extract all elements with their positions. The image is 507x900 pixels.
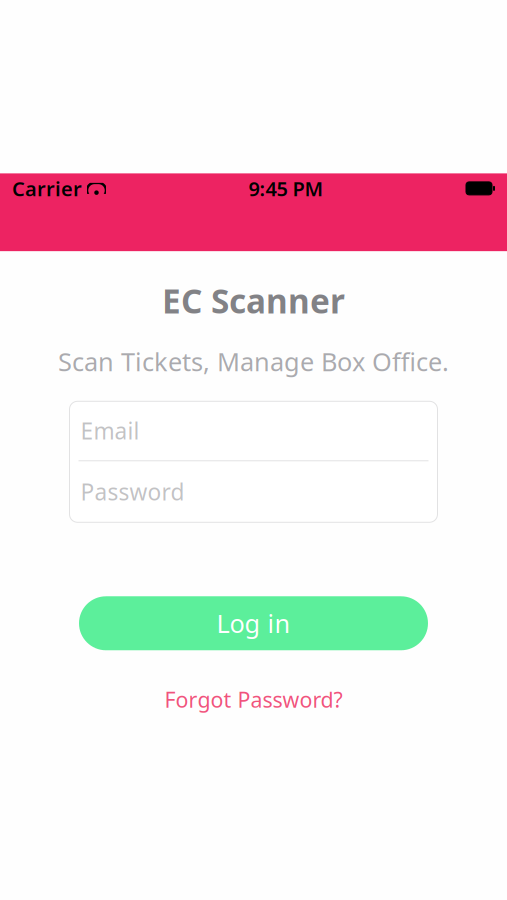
staticText: Email: [80, 416, 139, 446]
staticText: Forgot Password?: [164, 685, 342, 714]
button[interactable]: Log in: [79, 596, 428, 650]
staticText: 9:45 PM: [248, 175, 323, 202]
staticText: Scan Tickets, Manage Box Office.: [58, 345, 449, 378]
staticText: Log in: [216, 606, 290, 640]
staticText: Carrier: [12, 175, 82, 202]
staticText: Password: [80, 477, 184, 507]
button[interactable]: Forgot Password?: [154, 680, 352, 719]
staticText: EC Scanner: [162, 278, 345, 323]
